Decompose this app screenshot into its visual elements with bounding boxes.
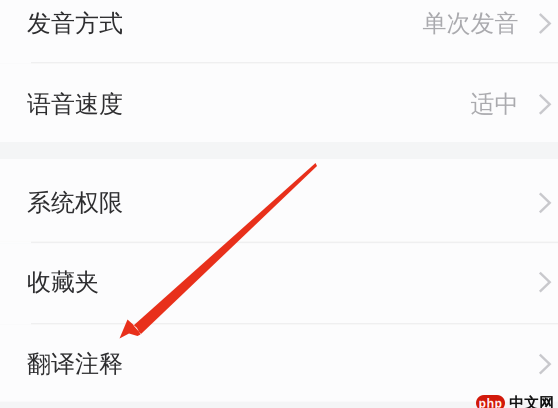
staticText: 语音速度 [27,90,123,119]
button[interactable]: 收藏夹 [0,243,558,323]
staticText: 单次发音 [422,9,518,38]
staticText: 发音方式 [27,9,123,38]
button[interactable]: 语音速度 [0,64,558,142]
staticText: 系统权限 [27,188,123,218]
staticText: 适中 [470,90,518,119]
button[interactable]: 系统权限 [0,159,558,242]
staticText: 收藏夹 [27,267,99,297]
staticText: php [478,395,502,408]
button[interactable]: 发音方式 [0,0,558,62]
staticText: 中文网 [509,394,554,408]
staticText: 翻译注释 [27,349,123,379]
button[interactable]: 翻译注释 [0,325,558,402]
